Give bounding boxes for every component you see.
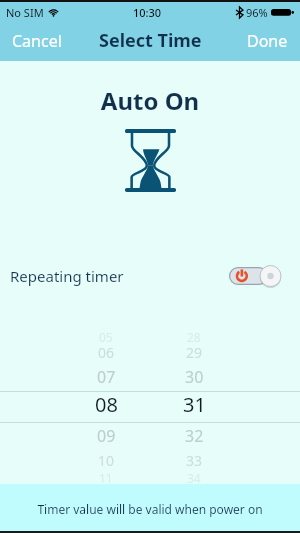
staticText: 31 <box>183 391 206 418</box>
staticText: Done <box>247 30 288 52</box>
button[interactable]: Done <box>235 22 300 60</box>
staticText: 32 <box>185 425 204 447</box>
staticText: Repeating timer <box>10 266 124 286</box>
staticText: 09 <box>97 425 116 447</box>
staticText: 29 <box>186 343 203 362</box>
button[interactable]: Repeating timer toggle <box>229 264 281 288</box>
staticText: No SIM <box>6 5 44 20</box>
staticText: Cancel <box>12 30 62 52</box>
staticText: 10 <box>98 451 115 470</box>
button[interactable]: Cancel <box>0 22 74 60</box>
staticText: 07 <box>97 366 116 388</box>
staticText: 96% <box>246 5 268 20</box>
staticText: 06 <box>98 343 115 362</box>
staticText: 11 <box>99 470 113 486</box>
staticText: Select Time <box>99 28 202 53</box>
staticText: 08 <box>95 391 118 418</box>
staticText: 34 <box>187 470 201 486</box>
staticText: 10:30 <box>133 5 162 20</box>
staticText: 28 <box>187 329 201 345</box>
staticText: 30 <box>185 366 204 388</box>
staticText: Auto On <box>0 84 300 117</box>
staticText: 33 <box>186 451 203 470</box>
staticText: 05 <box>99 329 113 345</box>
staticText: Timer value will be valid when power on <box>37 501 263 517</box>
